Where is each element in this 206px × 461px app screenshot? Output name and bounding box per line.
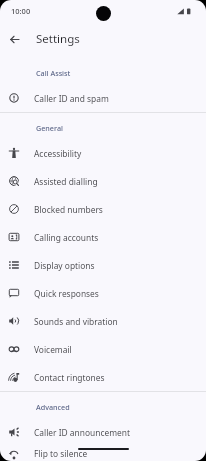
staticText: Advanced — [36, 402, 70, 412]
staticText: Flip to silence — [34, 448, 88, 459]
staticText: Blocked numbers — [34, 204, 103, 215]
button[interactable]: Caller ID announcement — [0, 418, 206, 446]
button[interactable]: Sounds and vibration — [0, 307, 206, 335]
staticText: Assisted dialling — [34, 176, 98, 187]
staticText: Settings — [36, 31, 80, 47]
staticText: Caller ID and spam — [34, 93, 109, 104]
staticText: Quick responses — [34, 288, 99, 299]
staticText: General — [36, 123, 63, 133]
staticText: Sounds and vibration — [34, 316, 118, 327]
button[interactable]: Calling accounts — [0, 223, 206, 251]
staticText: 10:00 — [11, 6, 31, 16]
button[interactable]: Blocked numbers — [0, 195, 206, 223]
staticText: Caller ID announcement — [34, 427, 130, 438]
staticText: Call Assist — [36, 68, 71, 78]
staticText: Voicemail — [34, 344, 72, 355]
button[interactable]: Display options — [0, 251, 206, 279]
staticText: Contact ringtones — [34, 372, 105, 383]
staticText: Calling accounts — [34, 232, 99, 243]
staticText: Display options — [34, 260, 95, 271]
button[interactable]: Caller ID and spam — [0, 84, 206, 112]
button[interactable]: Contact ringtones — [0, 363, 206, 391]
button[interactable]: Flip to silence — [0, 446, 206, 461]
button[interactable]: Assisted dialling — [0, 167, 206, 195]
button[interactable]: Voicemail — [0, 335, 206, 363]
button[interactable]: Back — [2, 27, 27, 52]
button[interactable]: Accessibility — [0, 139, 206, 167]
staticText: Accessibility — [34, 148, 82, 159]
button[interactable]: Quick responses — [0, 279, 206, 307]
